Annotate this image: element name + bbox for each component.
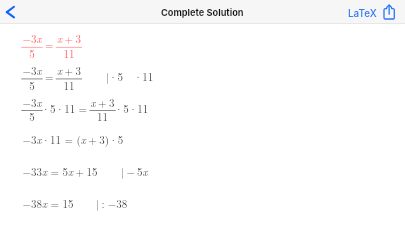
staticText: Complete Solution — [161, 7, 244, 18]
button[interactable]: Share — [381, 2, 398, 22]
staticText: LaTeX — [348, 7, 377, 19]
button[interactable]: Back — [1, 2, 22, 23]
button[interactable]: LaTeX — [344, 4, 381, 21]
